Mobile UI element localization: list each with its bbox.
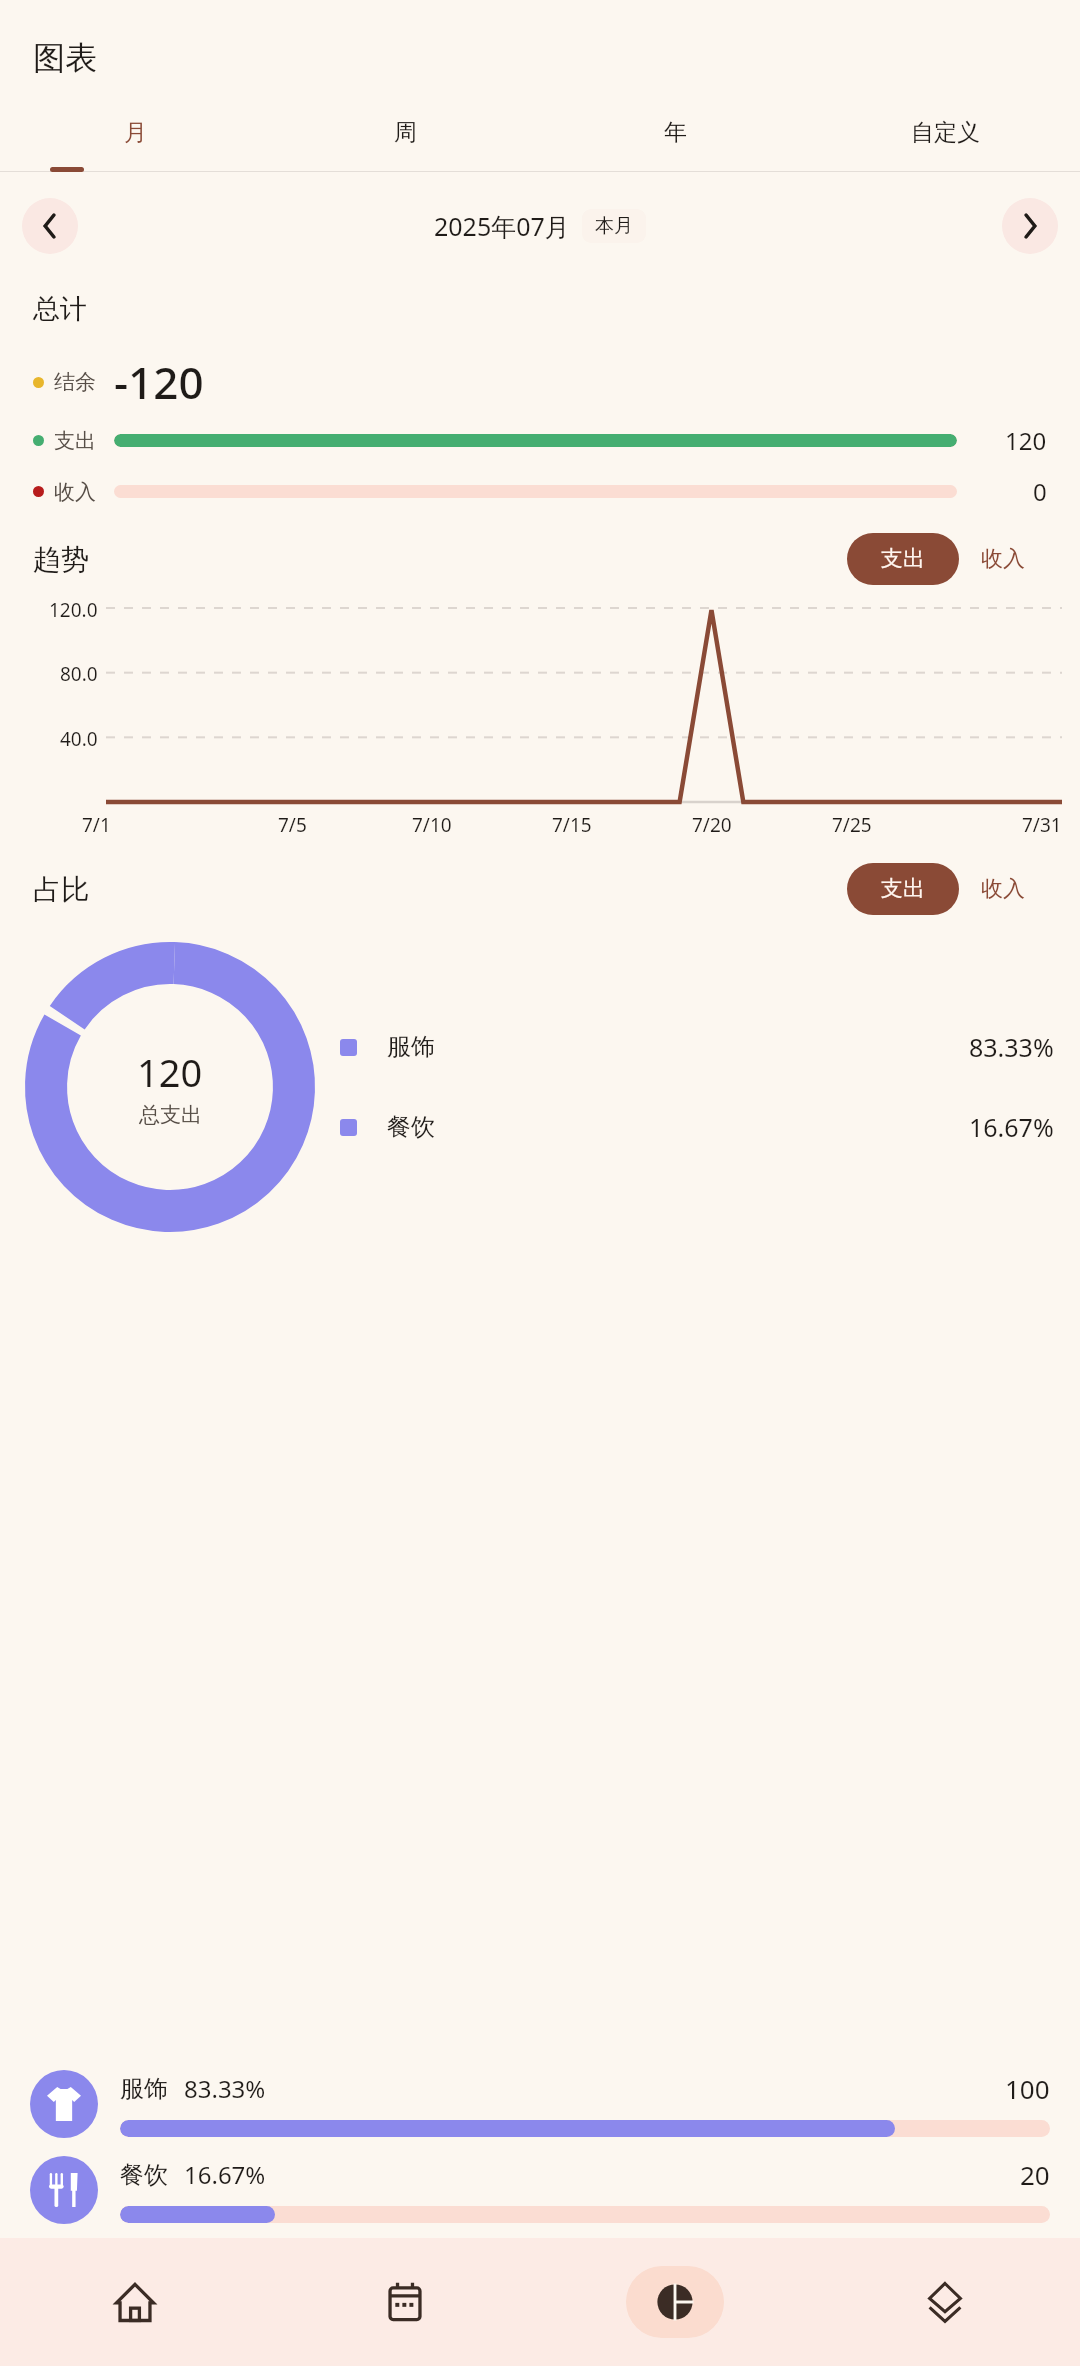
staticText: 83.33% [184, 2072, 266, 2105]
button[interactable]: 收入 [959, 533, 1047, 585]
staticText: 7/1 [82, 812, 111, 838]
button[interactable]: 服饰 [30, 2070, 1050, 2138]
staticText: 7/5 [278, 812, 307, 838]
staticText: 16.67% [184, 2158, 266, 2191]
button[interactable]: Home [0, 2238, 270, 2366]
staticText: 收入 [981, 545, 1025, 573]
staticText: -120 [114, 352, 204, 412]
staticText: 20 [1020, 2157, 1050, 2192]
staticText: 7/31 [1022, 812, 1062, 838]
staticText: 7/25 [832, 812, 872, 838]
button[interactable]: Next month [1002, 198, 1058, 254]
button[interactable]: Layers [810, 2238, 1080, 2366]
staticText: 趋势 [33, 542, 89, 577]
staticText: 餐饮 [120, 2160, 168, 2190]
staticText: 2025年07月 [434, 209, 570, 243]
button[interactable]: 月 [0, 118, 270, 172]
staticText: 40.0 [60, 726, 98, 752]
staticText: 7/15 [552, 812, 592, 838]
staticText: 餐饮 [387, 1112, 435, 1142]
staticText: 结余 [54, 369, 96, 395]
staticText: 支出 [881, 545, 925, 573]
button[interactable]: 年 [540, 118, 810, 172]
staticText: 80.0 [60, 661, 98, 687]
staticText: 0 [1033, 475, 1047, 508]
button[interactable]: 餐饮 [30, 2156, 1050, 2224]
staticText: 收入 [54, 479, 96, 505]
staticText: 周 [394, 118, 417, 147]
staticText: 7/20 [692, 812, 732, 838]
button[interactable]: Previous month [22, 198, 78, 254]
staticText: 年 [664, 118, 687, 147]
staticText: 120 [1005, 424, 1047, 457]
staticText: 总计 [33, 292, 87, 326]
staticText: 120.0 [49, 597, 98, 623]
button[interactable]: 支出 [847, 533, 959, 585]
button[interactable]: Charts [540, 2238, 810, 2366]
staticText: 本月 [595, 214, 633, 238]
button[interactable]: 支出 [847, 863, 959, 915]
button[interactable]: Calendar [270, 2238, 540, 2366]
staticText: 服饰 [120, 2074, 168, 2104]
button[interactable]: 本月 [582, 209, 646, 243]
staticText: 16.67% [969, 1110, 1054, 1144]
staticText: 收入 [981, 875, 1025, 903]
staticText: 100 [1005, 2071, 1050, 2106]
button[interactable]: 周 [270, 118, 540, 172]
staticText: 占比 [33, 872, 89, 907]
staticText: 120 [137, 1046, 203, 1098]
button[interactable]: 收入 [959, 863, 1047, 915]
staticText: 支出 [881, 875, 925, 903]
staticText: 总支出 [139, 1102, 202, 1128]
staticText: 月 [124, 118, 147, 147]
staticText: 自定义 [911, 118, 980, 147]
staticText: 支出 [54, 428, 96, 454]
staticText: 7/10 [412, 812, 452, 838]
button[interactable]: 自定义 [810, 118, 1080, 172]
staticText: 服饰 [387, 1032, 435, 1062]
staticText: 83.33% [969, 1030, 1054, 1064]
staticText: 图表 [33, 38, 97, 78]
